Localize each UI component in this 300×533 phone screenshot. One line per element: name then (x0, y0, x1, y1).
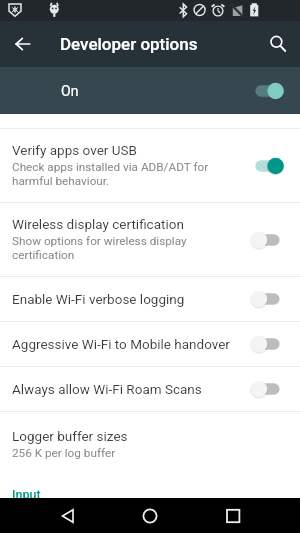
button[interactable]: Home (135, 501, 165, 531)
staticText: Always allow Wi-Fi Roam Scans (12, 381, 202, 397)
button[interactable]: Always allow Wi-Fi Roam Scans (0, 367, 300, 411)
staticText: Verify apps over USB (12, 142, 137, 158)
staticText: Aggressive Wi-Fi to Mobile handover (12, 336, 230, 352)
button[interactable]: Navigate up (7, 28, 39, 60)
staticText: Wireless display certification (12, 216, 184, 232)
staticText: Show options for wireless display certif… (12, 234, 187, 262)
staticText: 256 K per log buffer (12, 446, 116, 460)
staticText: Input (12, 487, 41, 498)
button[interactable]: Back (53, 501, 83, 531)
button[interactable]: Recent apps (218, 501, 248, 531)
staticText: Logger buffer sizes (12, 428, 128, 444)
button[interactable]: Logger buffer sizes (0, 412, 300, 476)
button[interactable]: On (0, 67, 300, 114)
button[interactable]: Verify apps over USB (0, 129, 300, 202)
button[interactable]: Wireless display certification (0, 203, 300, 276)
staticText: Enable Wi-Fi verbose logging (12, 291, 185, 307)
staticText: On (61, 83, 253, 99)
staticText: Developer options (60, 34, 198, 54)
button[interactable]: Enable Wi-Fi verbose logging (0, 277, 300, 321)
button[interactable]: Aggressive Wi-Fi to Mobile handover (0, 322, 300, 366)
staticText: Check apps installed via ADB/ADT for har… (12, 160, 209, 188)
button[interactable]: Search (262, 28, 294, 60)
button[interactable]: Input (12, 487, 300, 498)
